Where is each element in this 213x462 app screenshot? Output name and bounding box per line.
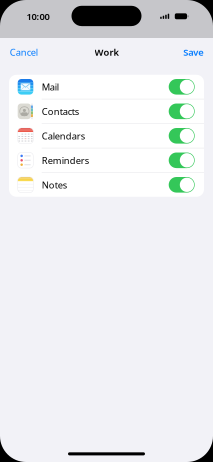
staticText: Cancel xyxy=(10,46,38,58)
button[interactable]: Calendars xyxy=(9,124,204,148)
button[interactable]: Mail xyxy=(9,75,204,99)
button[interactable]: Contacts xyxy=(9,99,204,123)
button[interactable]: Save xyxy=(181,43,205,62)
staticText: Notes xyxy=(42,179,67,191)
staticText: 10:00 xyxy=(26,10,49,22)
staticText: Calendars xyxy=(42,130,85,142)
staticText: Mail xyxy=(42,81,59,93)
button[interactable]: Notes xyxy=(9,173,204,197)
button[interactable]: Cancel xyxy=(8,43,40,62)
staticText: Save xyxy=(183,46,203,58)
staticText: Reminders xyxy=(42,154,89,166)
staticText: Contacts xyxy=(42,105,79,117)
staticText: Work xyxy=(94,46,118,58)
button[interactable]: Reminders xyxy=(9,148,204,172)
